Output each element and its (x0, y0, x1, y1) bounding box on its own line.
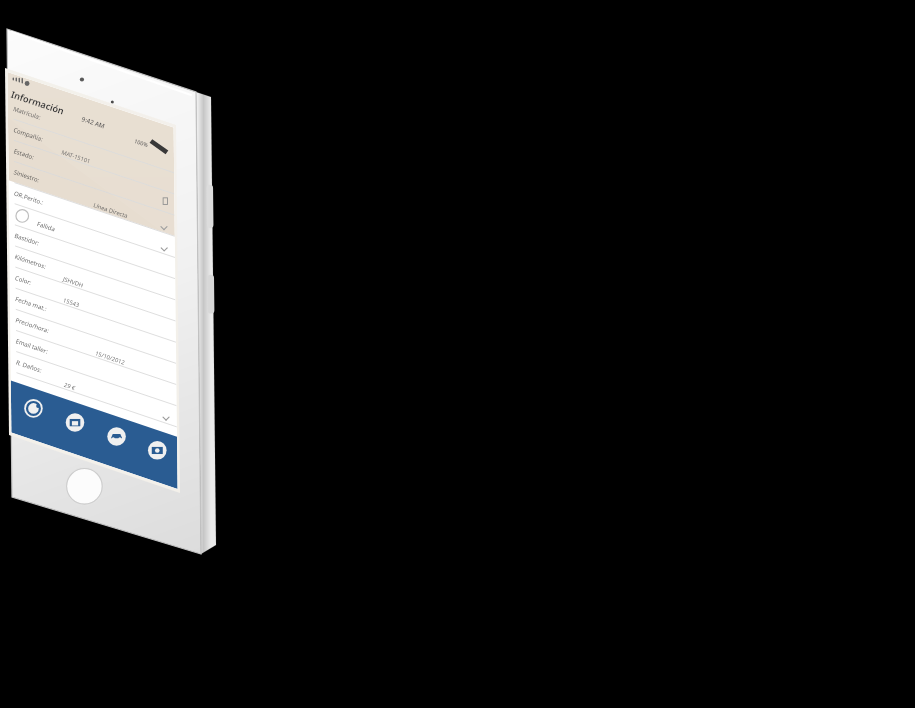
button[interactable]: Información vehicle form shown on an iPh… (0, 0, 915, 708)
